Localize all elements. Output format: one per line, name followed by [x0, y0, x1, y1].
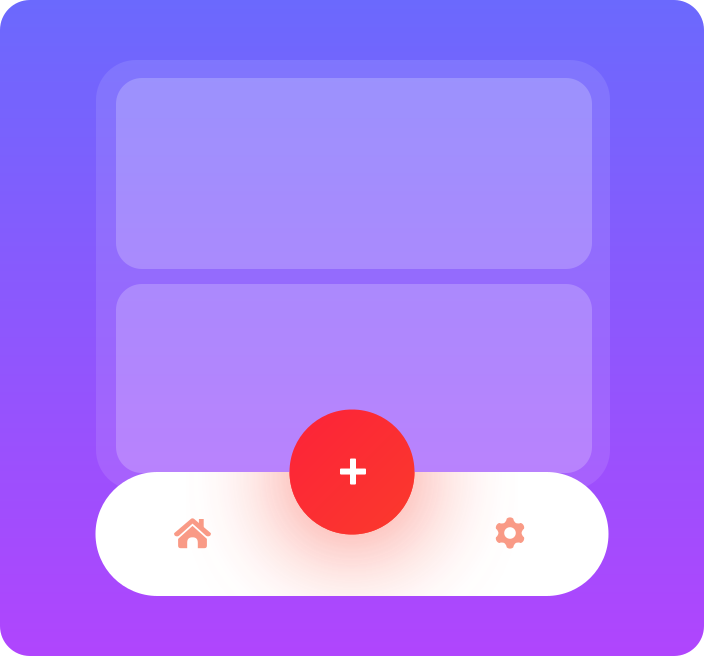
button[interactable]: Settings: [466, 489, 554, 577]
button[interactable]: Add: [289, 409, 414, 534]
button[interactable]: Home: [148, 489, 236, 577]
